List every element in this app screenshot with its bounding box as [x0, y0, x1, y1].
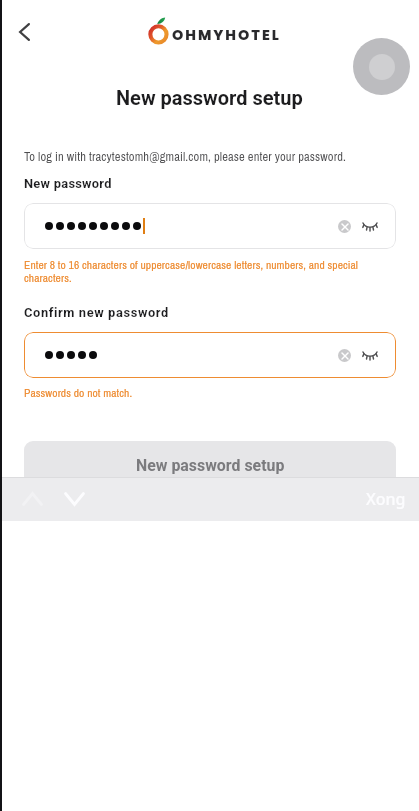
- staticText: Confirm new password: [24, 305, 169, 320]
- button[interactable]: Assistive touch: [353, 38, 410, 95]
- staticText: Passwords do not match.: [24, 385, 133, 401]
- button[interactable]: New password setup: [24, 441, 396, 489]
- button[interactable]: Clear text: [24, 332, 396, 378]
- staticText: OHMYHOTEL: [172, 25, 281, 45]
- staticText: New password setup: [116, 86, 303, 109]
- staticText: Enter 8 to 16 characters of uppercase/lo…: [24, 257, 382, 286]
- button[interactable]: Clear text: [24, 203, 396, 249]
- button[interactable]: Back: [2, 10, 46, 54]
- staticText: To log in with tracytestomh@gmail.com, p…: [24, 148, 346, 165]
- button[interactable]: Clear text: [333, 215, 355, 237]
- staticText: New password setup: [136, 456, 285, 475]
- button[interactable]: Clear text: [333, 344, 355, 366]
- button[interactable]: Show password: [360, 216, 380, 236]
- button[interactable]: Xong: [366, 488, 406, 510]
- button[interactable]: Next field: [53, 479, 95, 519]
- button[interactable]: Show password: [360, 345, 380, 365]
- staticText: Xong: [366, 488, 406, 510]
- staticText: New password: [24, 176, 112, 191]
